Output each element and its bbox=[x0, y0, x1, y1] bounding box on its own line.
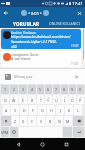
staticText: 6 bbox=[48, 95, 50, 98]
button[interactable]: Back bbox=[13, 139, 24, 150]
staticText: Mesaj yaz bbox=[14, 74, 33, 79]
button[interactable]: 6 bbox=[45, 85, 52, 94]
button[interactable]: Recents bbox=[61, 139, 72, 150]
staticText: W bbox=[12, 98, 16, 103]
staticText: 4 bbox=[31, 95, 33, 98]
button[interactable] bbox=[10, 127, 18, 137]
button[interactable]: H bbox=[47, 105, 55, 115]
staticText: A bbox=[5, 108, 8, 113]
button[interactable]: N bbox=[55, 116, 63, 126]
button[interactable] bbox=[1, 116, 11, 126]
button[interactable]: D bbox=[20, 105, 28, 115]
staticText: N bbox=[58, 119, 61, 124]
staticText: C bbox=[31, 119, 34, 124]
button[interactable]: Arakim Dadasm bbox=[1, 29, 81, 49]
staticText: O bbox=[71, 98, 74, 103]
button[interactable]: X bbox=[20, 116, 27, 126]
button[interactable]: Z bbox=[12, 116, 19, 126]
button[interactable]: L bbox=[74, 105, 82, 115]
staticText: lismatmask-kiyilari-2-17932- bbox=[11, 39, 57, 44]
staticText: YORUM.AR bbox=[13, 21, 40, 27]
staticText: E bbox=[22, 98, 24, 103]
button[interactable]: M bbox=[64, 116, 72, 126]
button[interactable]: Home bbox=[37, 139, 48, 150]
staticText: ◂ bbox=[28, 11, 30, 15]
button[interactable]: C bbox=[28, 116, 36, 126]
staticText: X bbox=[22, 119, 25, 124]
button[interactable]: S bbox=[11, 105, 19, 115]
button[interactable]: Send bbox=[72, 72, 82, 82]
button[interactable]: 0 bbox=[77, 85, 84, 94]
staticText: I bbox=[64, 98, 66, 103]
button[interactable]: V bbox=[37, 116, 45, 126]
button[interactable]: 1 bbox=[1, 95, 9, 104]
button[interactable]: 1 bbox=[1, 85, 9, 94]
button[interactable]: 2 bbox=[10, 95, 18, 104]
staticText: U bbox=[55, 98, 58, 103]
staticText: ▸ bbox=[40, 11, 42, 15]
button[interactable]: 4 bbox=[28, 85, 36, 94]
button[interactable]: 3 bbox=[19, 85, 27, 94]
button[interactable]: Lomgasinic Omer bbox=[1, 51, 81, 67]
staticText: 8 bbox=[64, 95, 66, 98]
button[interactable]: J bbox=[56, 105, 64, 115]
button[interactable]: 7 bbox=[53, 95, 60, 104]
button[interactable]: 7 bbox=[53, 85, 60, 94]
staticText: L bbox=[77, 108, 79, 113]
button[interactable]: 6 bbox=[45, 95, 52, 104]
staticText: Q bbox=[4, 98, 7, 103]
button[interactable]: Attach bbox=[3, 72, 12, 81]
button[interactable]: 9 bbox=[69, 95, 76, 104]
staticText: K bbox=[68, 108, 71, 113]
button[interactable]: Options bbox=[75, 9, 84, 18]
staticText: 2 bbox=[13, 95, 15, 98]
staticText: Y bbox=[47, 98, 50, 103]
staticText: 5 bbox=[40, 95, 42, 98]
button[interactable]: Back bbox=[1, 8, 11, 18]
button[interactable]: F bbox=[29, 105, 37, 115]
button[interactable]: 4 bbox=[28, 95, 36, 104]
staticText: S bbox=[14, 108, 16, 113]
staticText: 7 bbox=[56, 95, 58, 98]
staticText: R bbox=[31, 98, 34, 103]
button[interactable]: Caller bbox=[21, 10, 27, 16]
staticText: 3 bbox=[22, 95, 24, 98]
staticText: F bbox=[32, 108, 34, 113]
staticText: 1 bbox=[4, 87, 7, 92]
button[interactable]: Participant bbox=[43, 10, 49, 16]
button[interactable]: 0 bbox=[77, 95, 84, 104]
staticText: 5 bbox=[39, 87, 42, 92]
staticText: Arakim Dadasm bbox=[11, 30, 37, 34]
button[interactable]: SYM bbox=[1, 127, 9, 137]
button[interactable]: G bbox=[38, 105, 46, 115]
staticText: B bbox=[49, 119, 52, 124]
staticText: Z bbox=[14, 119, 17, 124]
button[interactable]: B bbox=[46, 116, 54, 126]
staticText: 17:31 bbox=[71, 44, 79, 48]
button[interactable]: 8 bbox=[61, 85, 68, 94]
button[interactable]: A bbox=[3, 105, 10, 115]
button[interactable]: 2 bbox=[10, 85, 18, 94]
button[interactable]: 5 bbox=[37, 95, 44, 104]
button[interactable]: 8 bbox=[61, 95, 68, 104]
staticText: 2 bbox=[13, 87, 16, 92]
staticText: https://www.bisiksiklaa2.com/bisiar/ bbox=[11, 34, 71, 39]
button[interactable]: 9 bbox=[69, 85, 76, 94]
staticText: T bbox=[40, 98, 42, 103]
button[interactable]: K bbox=[65, 105, 73, 115]
staticText: 7 bbox=[55, 87, 58, 92]
button[interactable] bbox=[73, 116, 84, 126]
button[interactable]: 3 bbox=[19, 95, 27, 104]
button[interactable] bbox=[73, 127, 84, 137]
button[interactable]: 5 bbox=[37, 85, 44, 94]
staticText: V bbox=[40, 119, 43, 124]
staticText: 17:41 bbox=[72, 1, 83, 7]
staticText: SYM bbox=[1, 130, 9, 135]
staticText: 0:01 bbox=[31, 11, 39, 16]
staticText: 0 bbox=[80, 95, 82, 98]
staticText: P bbox=[79, 98, 82, 103]
staticText: J bbox=[60, 108, 61, 113]
staticText: 9 bbox=[72, 95, 74, 98]
